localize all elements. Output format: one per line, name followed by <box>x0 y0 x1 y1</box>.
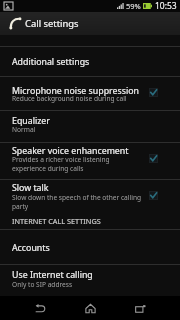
staticText: 10:53 <box>155 0 177 12</box>
staticText: Only to SIP address <box>12 280 73 289</box>
button[interactable]: Back <box>26 296 54 320</box>
staticText: Equalizer <box>12 115 50 127</box>
staticText: Speaker voice enhancement <box>12 145 129 157</box>
button[interactable] <box>0 46 180 76</box>
staticText: INTERNET CALL SETTINGS <box>12 216 101 226</box>
staticText: 59% <box>126 1 141 11</box>
button[interactable] <box>0 142 180 179</box>
button[interactable]: INTERNET CALL SETTINGS <box>12 216 101 226</box>
staticText: Provides a richer voice listening experi… <box>12 155 110 173</box>
staticText: Normal <box>12 125 36 134</box>
staticText: Call settings <box>25 17 79 30</box>
button[interactable]: Recent apps <box>126 296 154 320</box>
button[interactable] <box>0 76 180 110</box>
staticText: Slow talk <box>12 182 49 194</box>
staticText: Microphone noise suppression <box>12 85 139 97</box>
button[interactable] <box>0 264 180 296</box>
button[interactable] <box>0 179 180 229</box>
button[interactable] <box>0 229 180 264</box>
button[interactable]: Toggle Speaker voice enhancement <box>149 154 158 163</box>
staticText: Accounts <box>12 242 50 254</box>
staticText: Additional settings <box>12 56 90 68</box>
staticText: Slow down the speech of the other callin… <box>12 193 142 211</box>
button[interactable]: Toggle Microphone noise suppression <box>149 88 158 97</box>
staticText: Reduce background noise during call <box>12 94 127 103</box>
button[interactable]: Call settings <box>0 12 180 35</box>
button[interactable] <box>0 110 180 142</box>
staticText: Use Internet calling <box>12 269 93 281</box>
button[interactable]: Home <box>76 296 104 320</box>
button[interactable]: Toggle Slow talk <box>149 191 158 200</box>
